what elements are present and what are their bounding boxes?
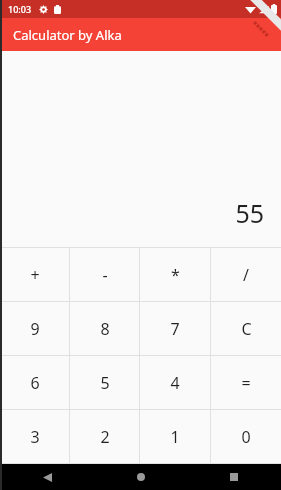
staticText: 5 bbox=[100, 372, 110, 394]
button[interactable]: Recent apps bbox=[214, 464, 254, 490]
staticText: 8 bbox=[100, 318, 110, 340]
button[interactable]: / bbox=[211, 248, 281, 301]
staticText: / bbox=[243, 264, 249, 286]
button[interactable]: C bbox=[211, 302, 281, 355]
button[interactable]: 0 bbox=[211, 410, 281, 463]
button[interactable]: 7 bbox=[140, 302, 210, 355]
staticText: 0 bbox=[241, 426, 251, 448]
button[interactable]: - bbox=[70, 248, 139, 301]
staticText: 2 bbox=[100, 426, 110, 448]
button[interactable]: Home bbox=[121, 464, 161, 490]
button[interactable]: 4 bbox=[140, 356, 210, 409]
staticText: 1 bbox=[170, 426, 180, 448]
button[interactable]: + bbox=[0, 248, 69, 301]
staticText: = bbox=[241, 372, 251, 394]
staticText: - bbox=[102, 264, 108, 286]
staticText: C bbox=[241, 318, 252, 340]
staticText: + bbox=[30, 264, 40, 286]
button[interactable]: 5 bbox=[70, 356, 139, 409]
button[interactable]: = bbox=[211, 356, 281, 409]
staticText: 4 bbox=[170, 372, 180, 394]
button[interactable]: 3 bbox=[0, 410, 69, 463]
staticText: * bbox=[171, 264, 180, 286]
button[interactable]: 1 bbox=[140, 410, 210, 463]
staticText: 3 bbox=[30, 426, 40, 448]
button[interactable]: 8 bbox=[70, 302, 139, 355]
staticText: 55 bbox=[235, 196, 264, 230]
button[interactable]: Back bbox=[27, 464, 67, 490]
staticText: 7 bbox=[170, 318, 180, 340]
staticText: Calculator by Alka bbox=[13, 26, 122, 44]
button[interactable]: * bbox=[140, 248, 210, 301]
staticText: 10:03 bbox=[8, 3, 32, 15]
staticText: 6 bbox=[30, 372, 40, 394]
button[interactable]: 6 bbox=[0, 356, 69, 409]
button[interactable]: 9 bbox=[0, 302, 69, 355]
button[interactable]: 2 bbox=[70, 410, 139, 463]
staticText: 9 bbox=[30, 318, 40, 340]
